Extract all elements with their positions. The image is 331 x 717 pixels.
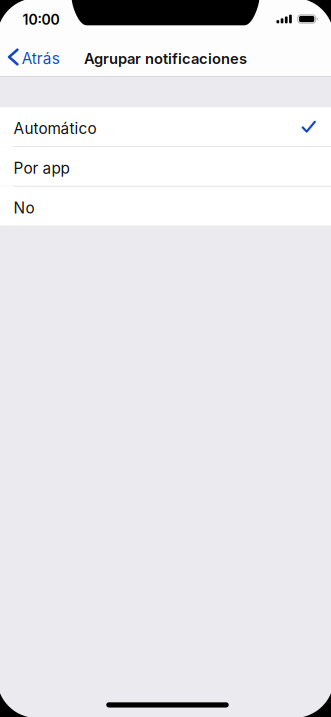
button[interactable]: Atrás bbox=[0, 38, 68, 76]
button[interactable]: No bbox=[0, 187, 331, 225]
staticText: Por app bbox=[13, 159, 69, 177]
staticText: Atrás bbox=[22, 49, 60, 68]
button[interactable]: Por app bbox=[0, 147, 331, 186]
button[interactable]: Automático bbox=[0, 107, 331, 146]
staticText: 10:00 bbox=[23, 11, 60, 28]
staticText: Automático bbox=[13, 119, 96, 138]
staticText: No bbox=[13, 199, 34, 217]
staticText: Agrupar notificaciones bbox=[84, 50, 247, 67]
